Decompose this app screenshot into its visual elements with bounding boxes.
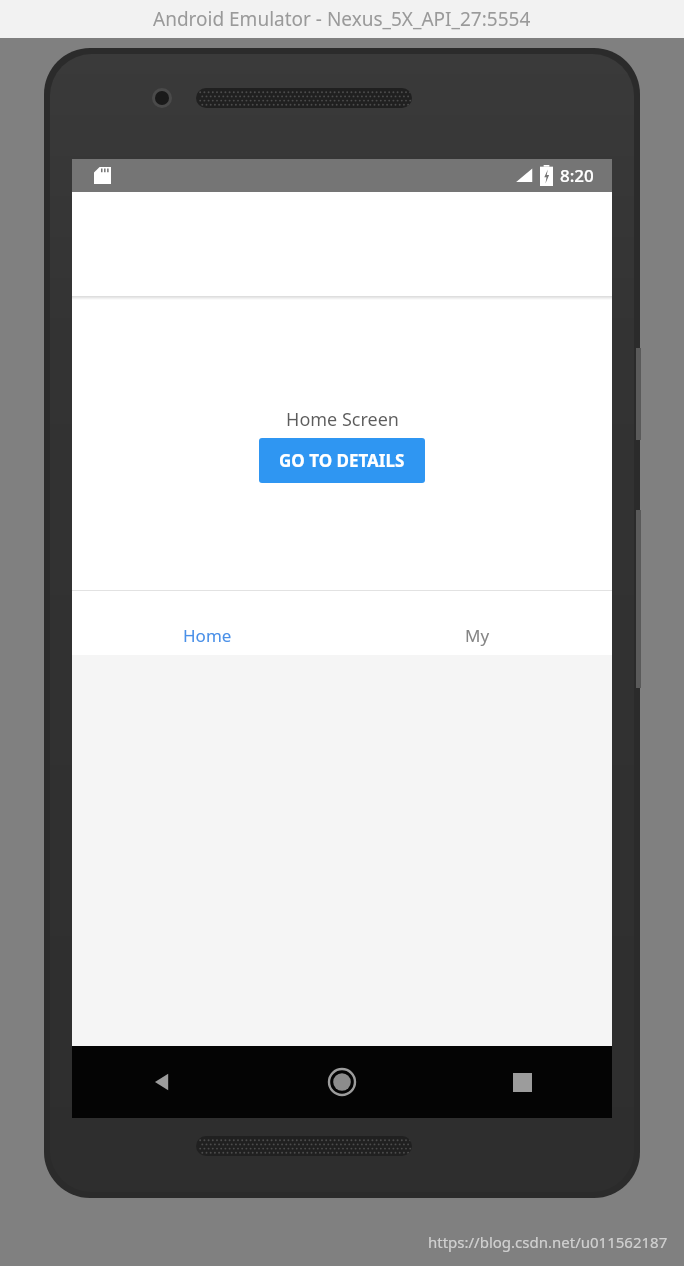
staticText: GO TO DETAILS: [279, 449, 405, 472]
staticText: https://blog.csdn.net/u011562187: [428, 1232, 668, 1252]
button[interactable]: Home: [252, 1046, 432, 1118]
staticText: Android Emulator - Nexus_5X_API_27:5554: [153, 6, 531, 32]
button[interactable]: Back: [72, 1046, 252, 1118]
staticText: My: [465, 624, 490, 647]
button[interactable]: My: [342, 591, 612, 655]
button[interactable]: GO TO DETAILS: [259, 438, 425, 483]
staticText: 8:20: [560, 164, 594, 187]
staticText: Home Screen: [286, 407, 399, 432]
button[interactable]: Recent apps: [432, 1046, 612, 1118]
button[interactable]: Home: [72, 591, 342, 655]
staticText: Home: [183, 624, 232, 647]
